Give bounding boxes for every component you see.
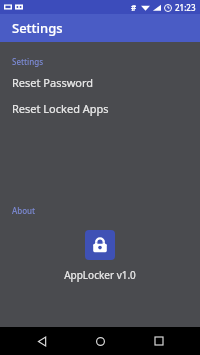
button[interactable]: Reset Password (0, 69, 200, 95)
button[interactable]: Back (25, 327, 59, 355)
staticText: AppLocker v1.0 (64, 268, 136, 282)
staticText: Reset Password (12, 75, 94, 90)
other: AppLocker app icon (85, 230, 115, 260)
staticText: Settings (12, 19, 63, 37)
button[interactable]: Reset Locked Apps (0, 95, 200, 121)
staticText: Reset Locked Apps (12, 101, 109, 116)
staticText: About (12, 205, 36, 216)
button[interactable]: Home (83, 327, 117, 355)
staticText: # (131, 2, 137, 13)
staticText: 21:23 (175, 2, 196, 13)
button[interactable]: Recent apps (142, 327, 176, 355)
staticText: Settings (12, 56, 44, 67)
